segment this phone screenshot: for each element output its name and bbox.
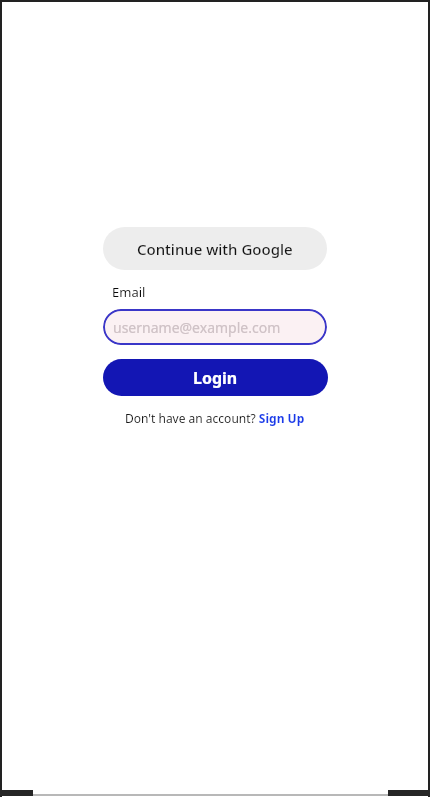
button[interactable]: username@example.com xyxy=(103,309,327,345)
staticText: username@example.com xyxy=(113,318,281,337)
staticText: Don't have an account? Sign Up xyxy=(125,410,305,426)
button[interactable]: Don't have an account? Sign Up xyxy=(125,410,305,426)
button[interactable]: Continue with Google xyxy=(103,227,327,270)
staticText: Login xyxy=(193,367,238,389)
staticText: Email xyxy=(112,283,146,301)
staticText: Continue with Google xyxy=(137,239,293,259)
button[interactable]: Login xyxy=(103,359,328,396)
